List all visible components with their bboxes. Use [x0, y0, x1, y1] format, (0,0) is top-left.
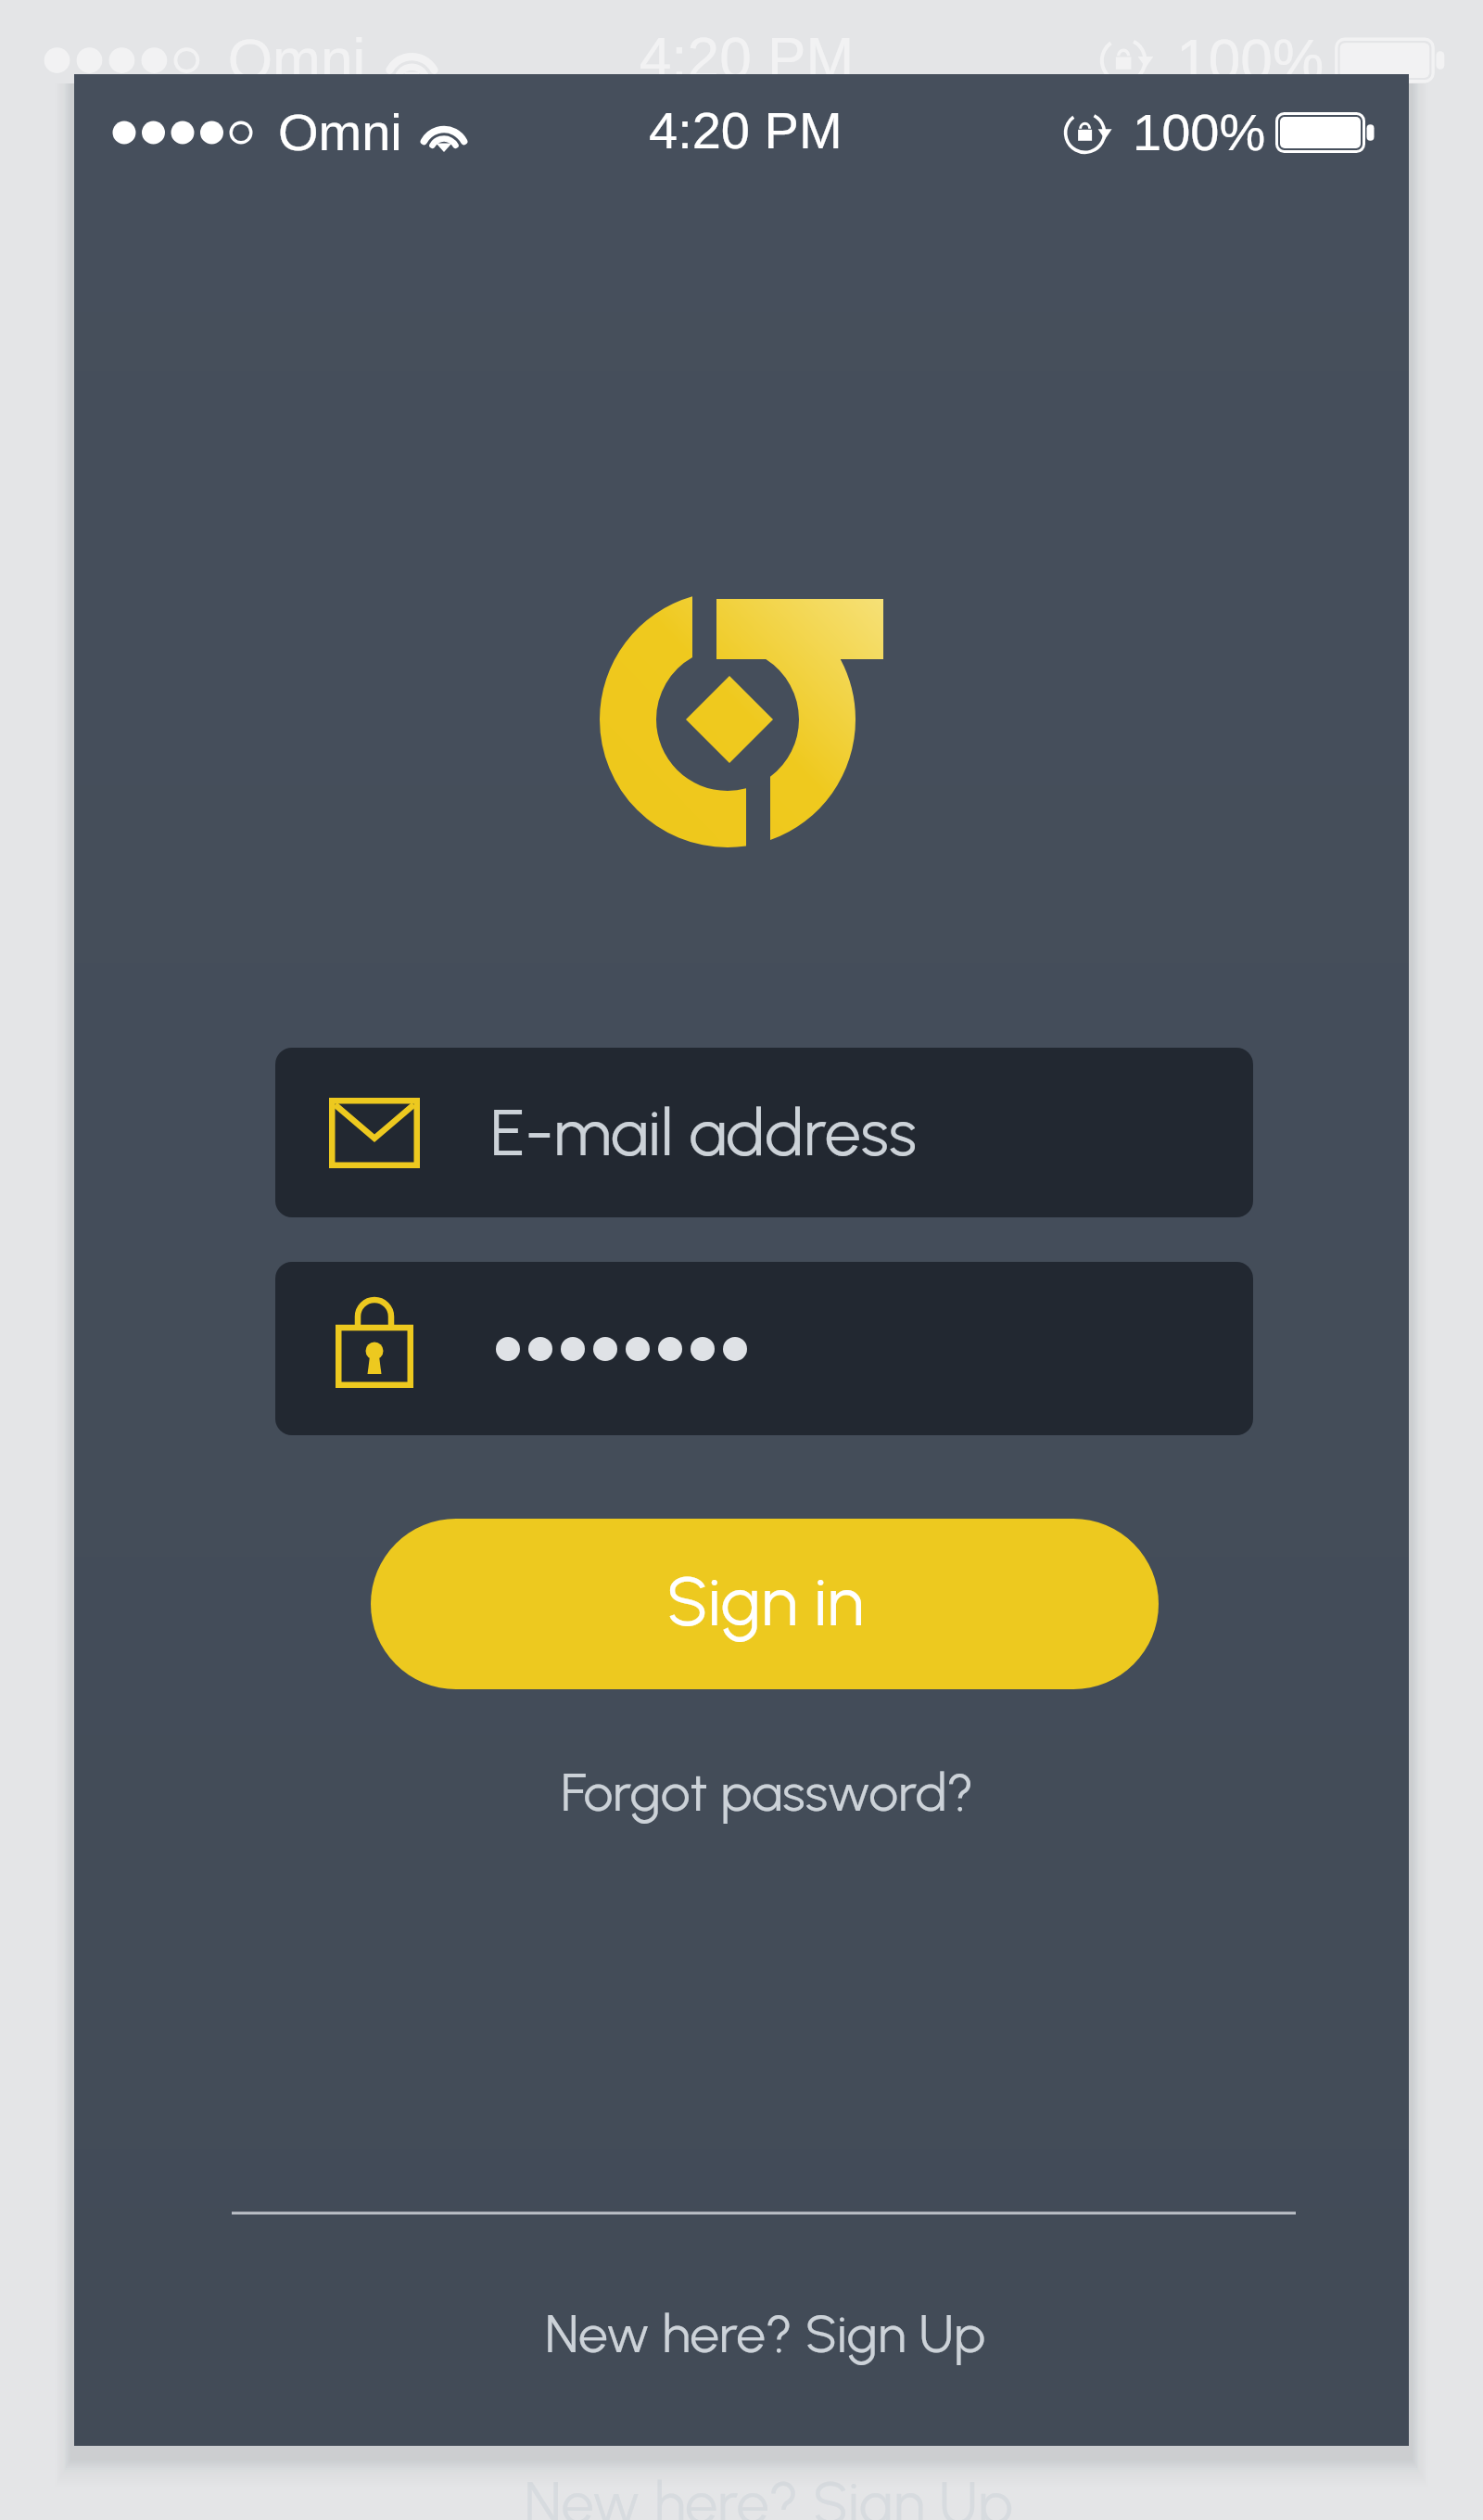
- staticText: 4:20 PM: [649, 101, 843, 159]
- staticText: Omni: [228, 27, 366, 92]
- other: Rotation lock: [1060, 105, 1120, 162]
- staticText: 100%: [1133, 103, 1266, 161]
- button[interactable]: New here? Sign Up: [488, 2287, 1044, 2380]
- staticText: 100%: [1176, 27, 1325, 92]
- button[interactable]: [275, 1262, 1253, 1435]
- button[interactable]: E-mail address: [275, 1048, 1253, 1217]
- other: Battery full: [1335, 38, 1446, 83]
- other: Battery full: [1275, 112, 1375, 153]
- staticText: 4:20 PM: [639, 25, 854, 90]
- other: Rotation lock: [1096, 29, 1162, 93]
- staticText: New here? Sign Up: [545, 2302, 986, 2365]
- staticText: Sign in: [666, 1560, 864, 1643]
- button[interactable]: Sign in: [371, 1519, 1159, 1689]
- staticText: Forgot password?: [561, 1761, 974, 1824]
- staticText: New here? Sign Up: [524, 2468, 1014, 2520]
- button[interactable]: New here? Sign Up: [460, 2452, 1078, 2520]
- button[interactable]: Forgot password?: [489, 1746, 1046, 1839]
- other: Wi-Fi: [417, 111, 471, 152]
- staticText: E-mail address: [490, 1093, 917, 1171]
- staticText: Omni: [278, 103, 402, 161]
- other: Wi-Fi: [382, 37, 442, 82]
